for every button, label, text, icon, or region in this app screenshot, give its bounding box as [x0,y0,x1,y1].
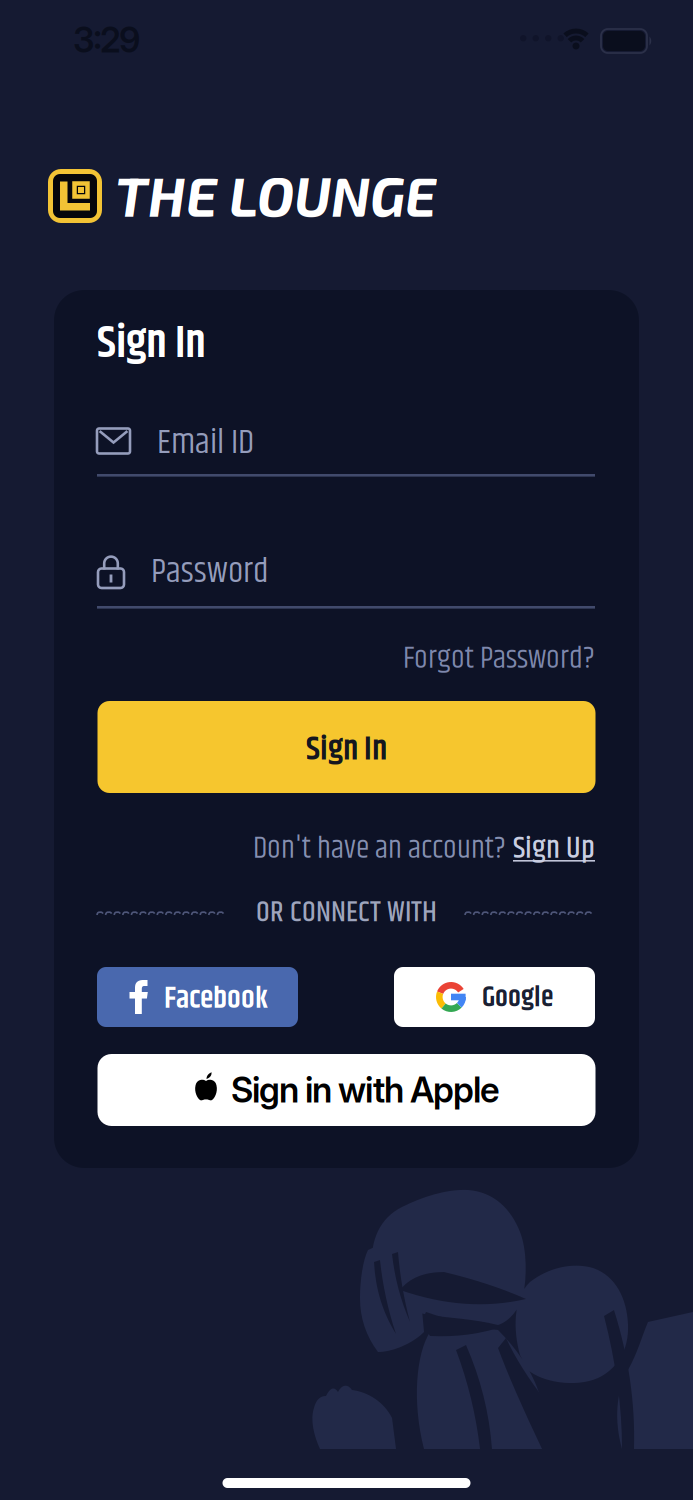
staticText: 3:29 [73,19,140,61]
button[interactable]: Facebook [97,967,298,1027]
button[interactable]: Sign in with Apple [97,1054,595,1126]
staticText: Facebook [164,976,268,1022]
staticText: Sign in with Apple [231,1069,500,1111]
button[interactable]: Forgot Password? [403,636,595,682]
staticText: OR CONNECT WITH [256,891,437,935]
staticText: Google [482,976,553,1020]
staticText: Password [151,545,268,598]
staticText: Sign In [97,309,206,379]
staticText: Email ID [157,416,254,469]
staticText: THE LOUNGE [115,162,436,228]
button[interactable]: Sign In [97,701,595,793]
staticText: Don't have an account? [253,826,506,872]
button[interactable]: Google [394,967,595,1027]
staticText: Forgot Password? [403,636,595,682]
staticText: Sign In [306,724,387,775]
button[interactable]: Sign Up [513,826,595,872]
staticText: Sign Up [513,826,595,872]
